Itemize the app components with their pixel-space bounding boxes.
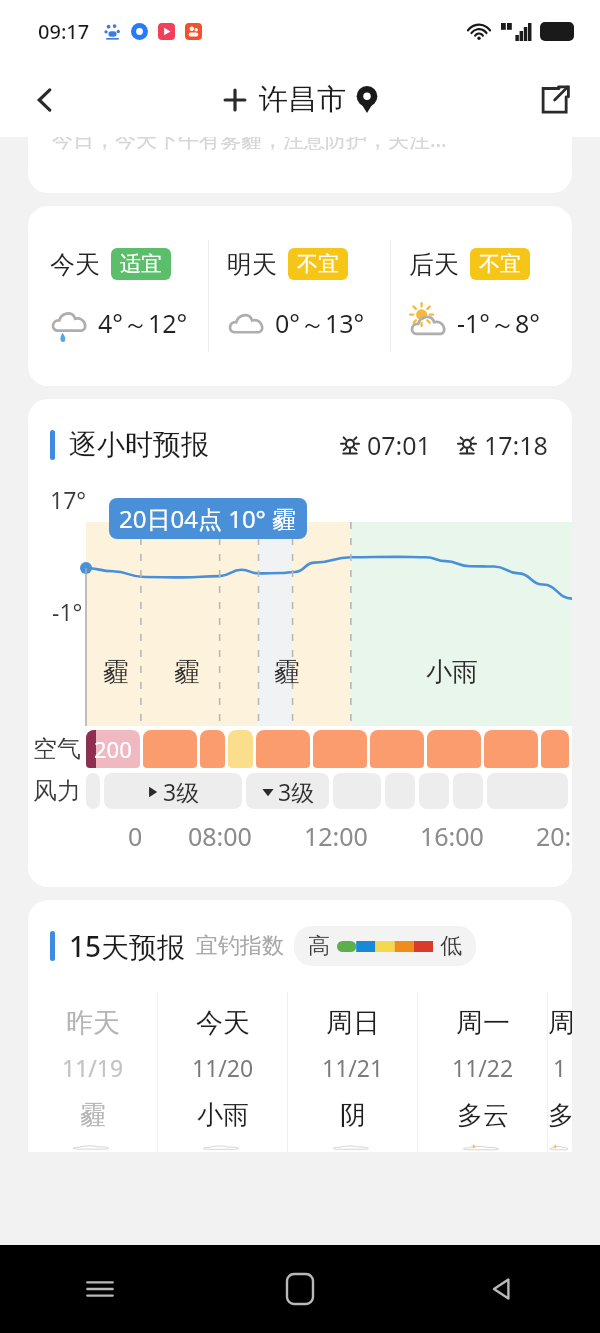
staticText: 霾	[103, 656, 129, 689]
staticText: 宜钓指数	[196, 932, 284, 960]
staticText: 小雨	[197, 1099, 249, 1132]
button[interactable]: Home	[200, 1245, 400, 1333]
staticText: 周日	[326, 1006, 380, 1040]
staticText: 11/22	[452, 1052, 514, 1083]
staticText: 小雨	[426, 656, 478, 689]
staticText: 20日04点 10° 霾	[119, 502, 297, 535]
button[interactable]: Recent apps	[0, 1245, 200, 1333]
staticText: 周	[548, 1006, 572, 1040]
staticText: 07:01	[367, 428, 431, 462]
button[interactable]: 明天	[209, 206, 390, 386]
button[interactable]: Share	[530, 76, 578, 124]
staticText: 阴	[340, 1099, 366, 1132]
staticText: 3级	[278, 776, 315, 807]
staticText: 昨天	[66, 1006, 120, 1040]
button[interactable]: 今日，今天下午有雾霾，注意防护，关注…	[28, 137, 572, 193]
staticText: 不宜	[297, 251, 339, 277]
staticText: -1°	[52, 596, 83, 627]
staticText: 多云	[457, 1099, 509, 1132]
staticText: 15天预报	[69, 927, 186, 965]
staticText: 适宜	[120, 251, 162, 277]
button[interactable]: 高	[308, 932, 462, 960]
staticText: -1°～8°	[457, 306, 541, 340]
staticText: 17°	[50, 484, 87, 515]
staticText: 16:00	[420, 819, 484, 853]
staticText: 20:00	[536, 819, 572, 853]
staticText: 霾	[174, 656, 200, 689]
button[interactable]: 昨天	[28, 992, 157, 1152]
button[interactable]: 周	[548, 992, 572, 1152]
staticText: 霾	[80, 1099, 106, 1132]
staticText: 霾	[274, 656, 300, 689]
button[interactable]: 周日	[288, 992, 417, 1152]
staticText: 1	[553, 1052, 567, 1083]
button[interactable]: Back	[22, 77, 68, 123]
button[interactable]: 今天	[158, 992, 287, 1152]
staticText: 周一	[456, 1006, 510, 1040]
staticText: 11/21	[322, 1052, 384, 1083]
button[interactable]: 许昌市	[222, 81, 378, 118]
staticText: 3级	[163, 776, 200, 807]
staticText: 今天	[50, 249, 100, 280]
staticText: 明天	[227, 249, 277, 280]
button[interactable]: 后天	[391, 206, 572, 386]
staticText: 今天	[196, 1006, 250, 1040]
staticText: 高	[308, 932, 330, 960]
button[interactable]: Back	[400, 1245, 600, 1333]
staticText: 许昌市	[259, 81, 346, 118]
staticText: 空气	[33, 734, 81, 764]
staticText: 逐小时预报	[69, 427, 209, 462]
button[interactable]: 周一	[418, 992, 547, 1152]
staticText: 4°～12°	[98, 306, 188, 340]
staticText: 不宜	[479, 251, 521, 277]
staticText: 风力	[33, 776, 81, 806]
staticText: 12:00	[304, 819, 368, 853]
staticText: 今日，今天下午有雾霾，注意防护，关注…	[52, 137, 447, 154]
staticText: 09:17	[38, 18, 90, 45]
staticText: 11/19	[62, 1052, 124, 1083]
staticText: 后天	[409, 249, 459, 280]
staticText: 0°～13°	[275, 306, 365, 340]
staticText: 0	[128, 819, 143, 853]
staticText: 低	[440, 932, 462, 960]
staticText: 08:00	[188, 819, 252, 853]
staticText: 200	[94, 734, 132, 764]
button[interactable]: 今天	[28, 206, 208, 386]
staticText: 11/20	[192, 1052, 254, 1083]
staticText: 17:18	[484, 428, 548, 462]
staticText: 多	[548, 1099, 572, 1132]
